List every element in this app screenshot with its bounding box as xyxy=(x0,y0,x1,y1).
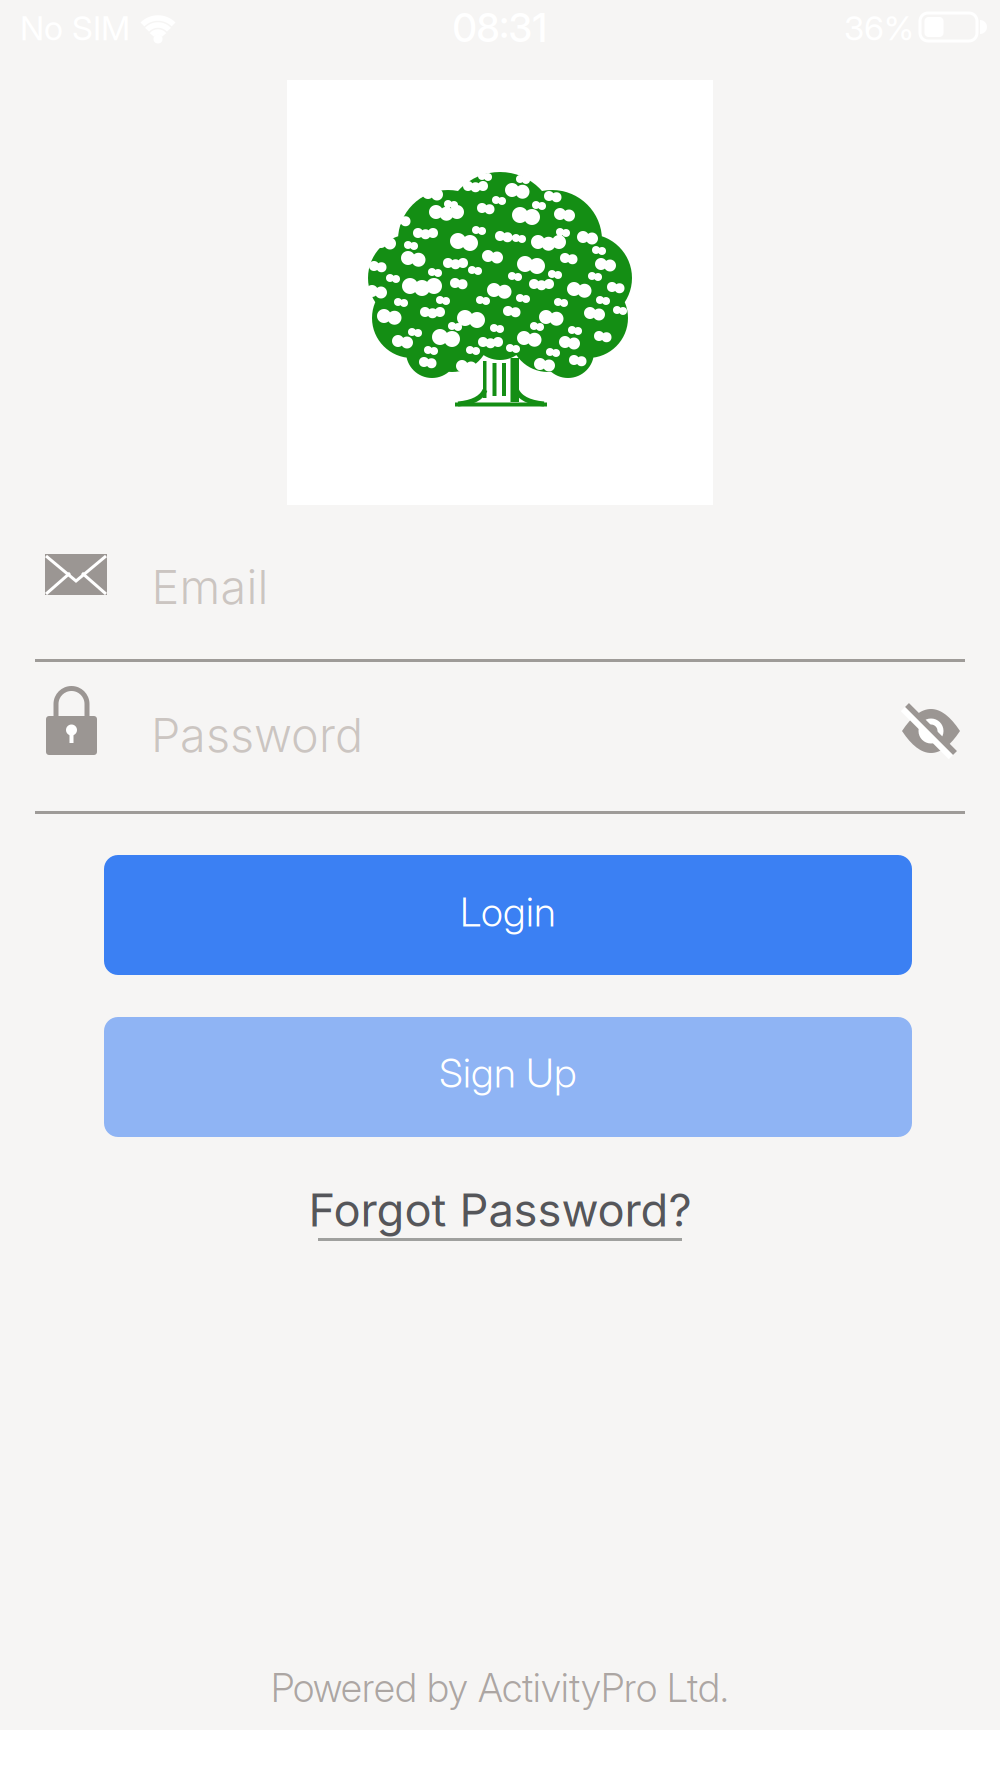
button[interactable]: Password xyxy=(35,680,965,790)
button[interactable]: Login xyxy=(104,855,912,975)
staticText: No SIM xyxy=(20,8,130,48)
staticText: Forgot Password? xyxy=(308,1183,691,1237)
staticText: 36% xyxy=(844,8,914,48)
staticText: Login xyxy=(460,888,556,936)
button[interactable]: Show password xyxy=(896,699,966,763)
staticText: Email xyxy=(151,559,268,615)
staticText: Password xyxy=(151,707,363,763)
button[interactable]: Sign Up xyxy=(104,1017,912,1137)
button[interactable]: Forgot Password? xyxy=(290,1177,710,1247)
button[interactable]: Email xyxy=(35,532,965,637)
staticText: Sign Up xyxy=(439,1049,577,1097)
staticText: 08:31 xyxy=(452,5,547,51)
staticText: Powered by ActivityPro Ltd. xyxy=(271,1665,729,1711)
